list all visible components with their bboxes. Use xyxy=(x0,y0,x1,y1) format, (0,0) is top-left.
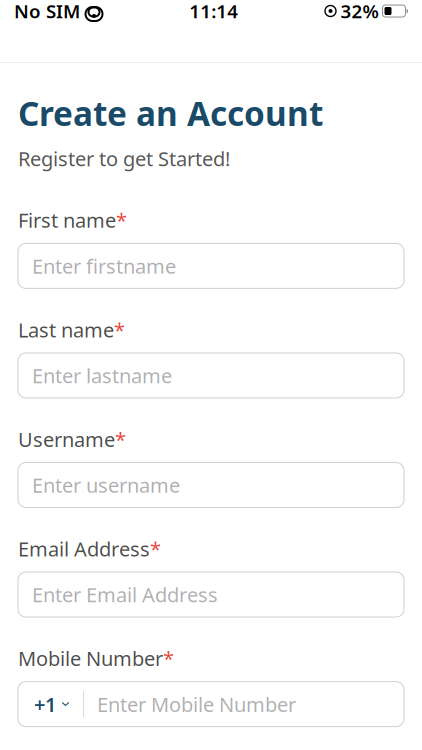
staticText: Enter Mobile Number xyxy=(97,691,296,717)
staticText: Mobile Number xyxy=(18,645,163,672)
staticText: +1 xyxy=(34,691,56,717)
staticText: * xyxy=(114,316,125,343)
button[interactable]: Enter lastname xyxy=(18,353,404,398)
staticText: Username xyxy=(18,426,115,452)
staticText: Register to get Started! xyxy=(18,145,230,172)
staticText: * xyxy=(116,207,127,233)
staticText: No SIM xyxy=(14,0,80,23)
staticText: * xyxy=(115,426,126,452)
button[interactable]: +1 xyxy=(18,682,404,727)
staticText: Last name xyxy=(18,316,114,343)
button[interactable]: Enter firstname xyxy=(18,243,404,288)
staticText: First name xyxy=(18,207,116,233)
staticText: Enter lastname xyxy=(32,362,172,389)
staticText: Email Address xyxy=(18,535,150,562)
staticText: Create an Account xyxy=(18,91,323,135)
staticText: Enter username xyxy=(32,472,180,498)
staticText: * xyxy=(150,535,161,562)
button[interactable]: Enter username xyxy=(18,462,404,507)
staticText: * xyxy=(163,645,174,672)
staticText: Enter firstname xyxy=(32,253,176,279)
staticText: 32% xyxy=(340,0,378,23)
staticText: 11:14 xyxy=(189,0,238,23)
staticText: Enter Email Address xyxy=(32,581,218,608)
button[interactable]: Enter Email Address xyxy=(18,572,404,617)
